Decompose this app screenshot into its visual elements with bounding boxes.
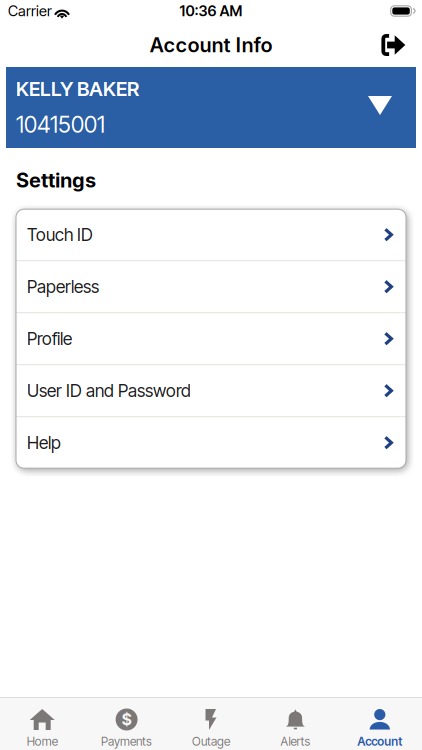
button[interactable]: Sign out [371,23,415,67]
button[interactable]: Paperless [16,261,406,312]
button[interactable]: Touch ID [16,209,406,260]
button[interactable]: Help [16,417,406,468]
staticText: Home [27,734,58,748]
staticText: 10415001 [16,111,105,138]
button[interactable]: Outage [169,698,253,750]
staticText: Touch ID [27,224,93,245]
staticText: Help [27,432,61,453]
staticText: Account [357,734,402,748]
button[interactable]: $ [84,698,169,750]
staticText: Carrier [8,2,52,20]
staticText: Settings [16,168,96,192]
staticText: Alerts [280,734,310,748]
button[interactable]: Alerts [253,698,338,750]
staticText: Payments [101,734,152,748]
staticText: Profile [27,328,72,349]
button[interactable]: User ID and Password [16,365,406,416]
staticText: Account Info [149,33,272,57]
button[interactable]: Profile [16,313,406,364]
staticText: $ [122,710,132,729]
button[interactable]: Account [338,698,422,750]
staticText: User ID and Password [27,380,191,401]
button[interactable]: Home [0,698,84,750]
staticText: Outage [192,734,230,748]
staticText: KELLY BAKER [16,77,139,101]
staticText: 10:36 AM [179,2,242,20]
button[interactable]: KELLY BAKER [6,67,416,148]
staticText: Paperless [27,276,99,297]
